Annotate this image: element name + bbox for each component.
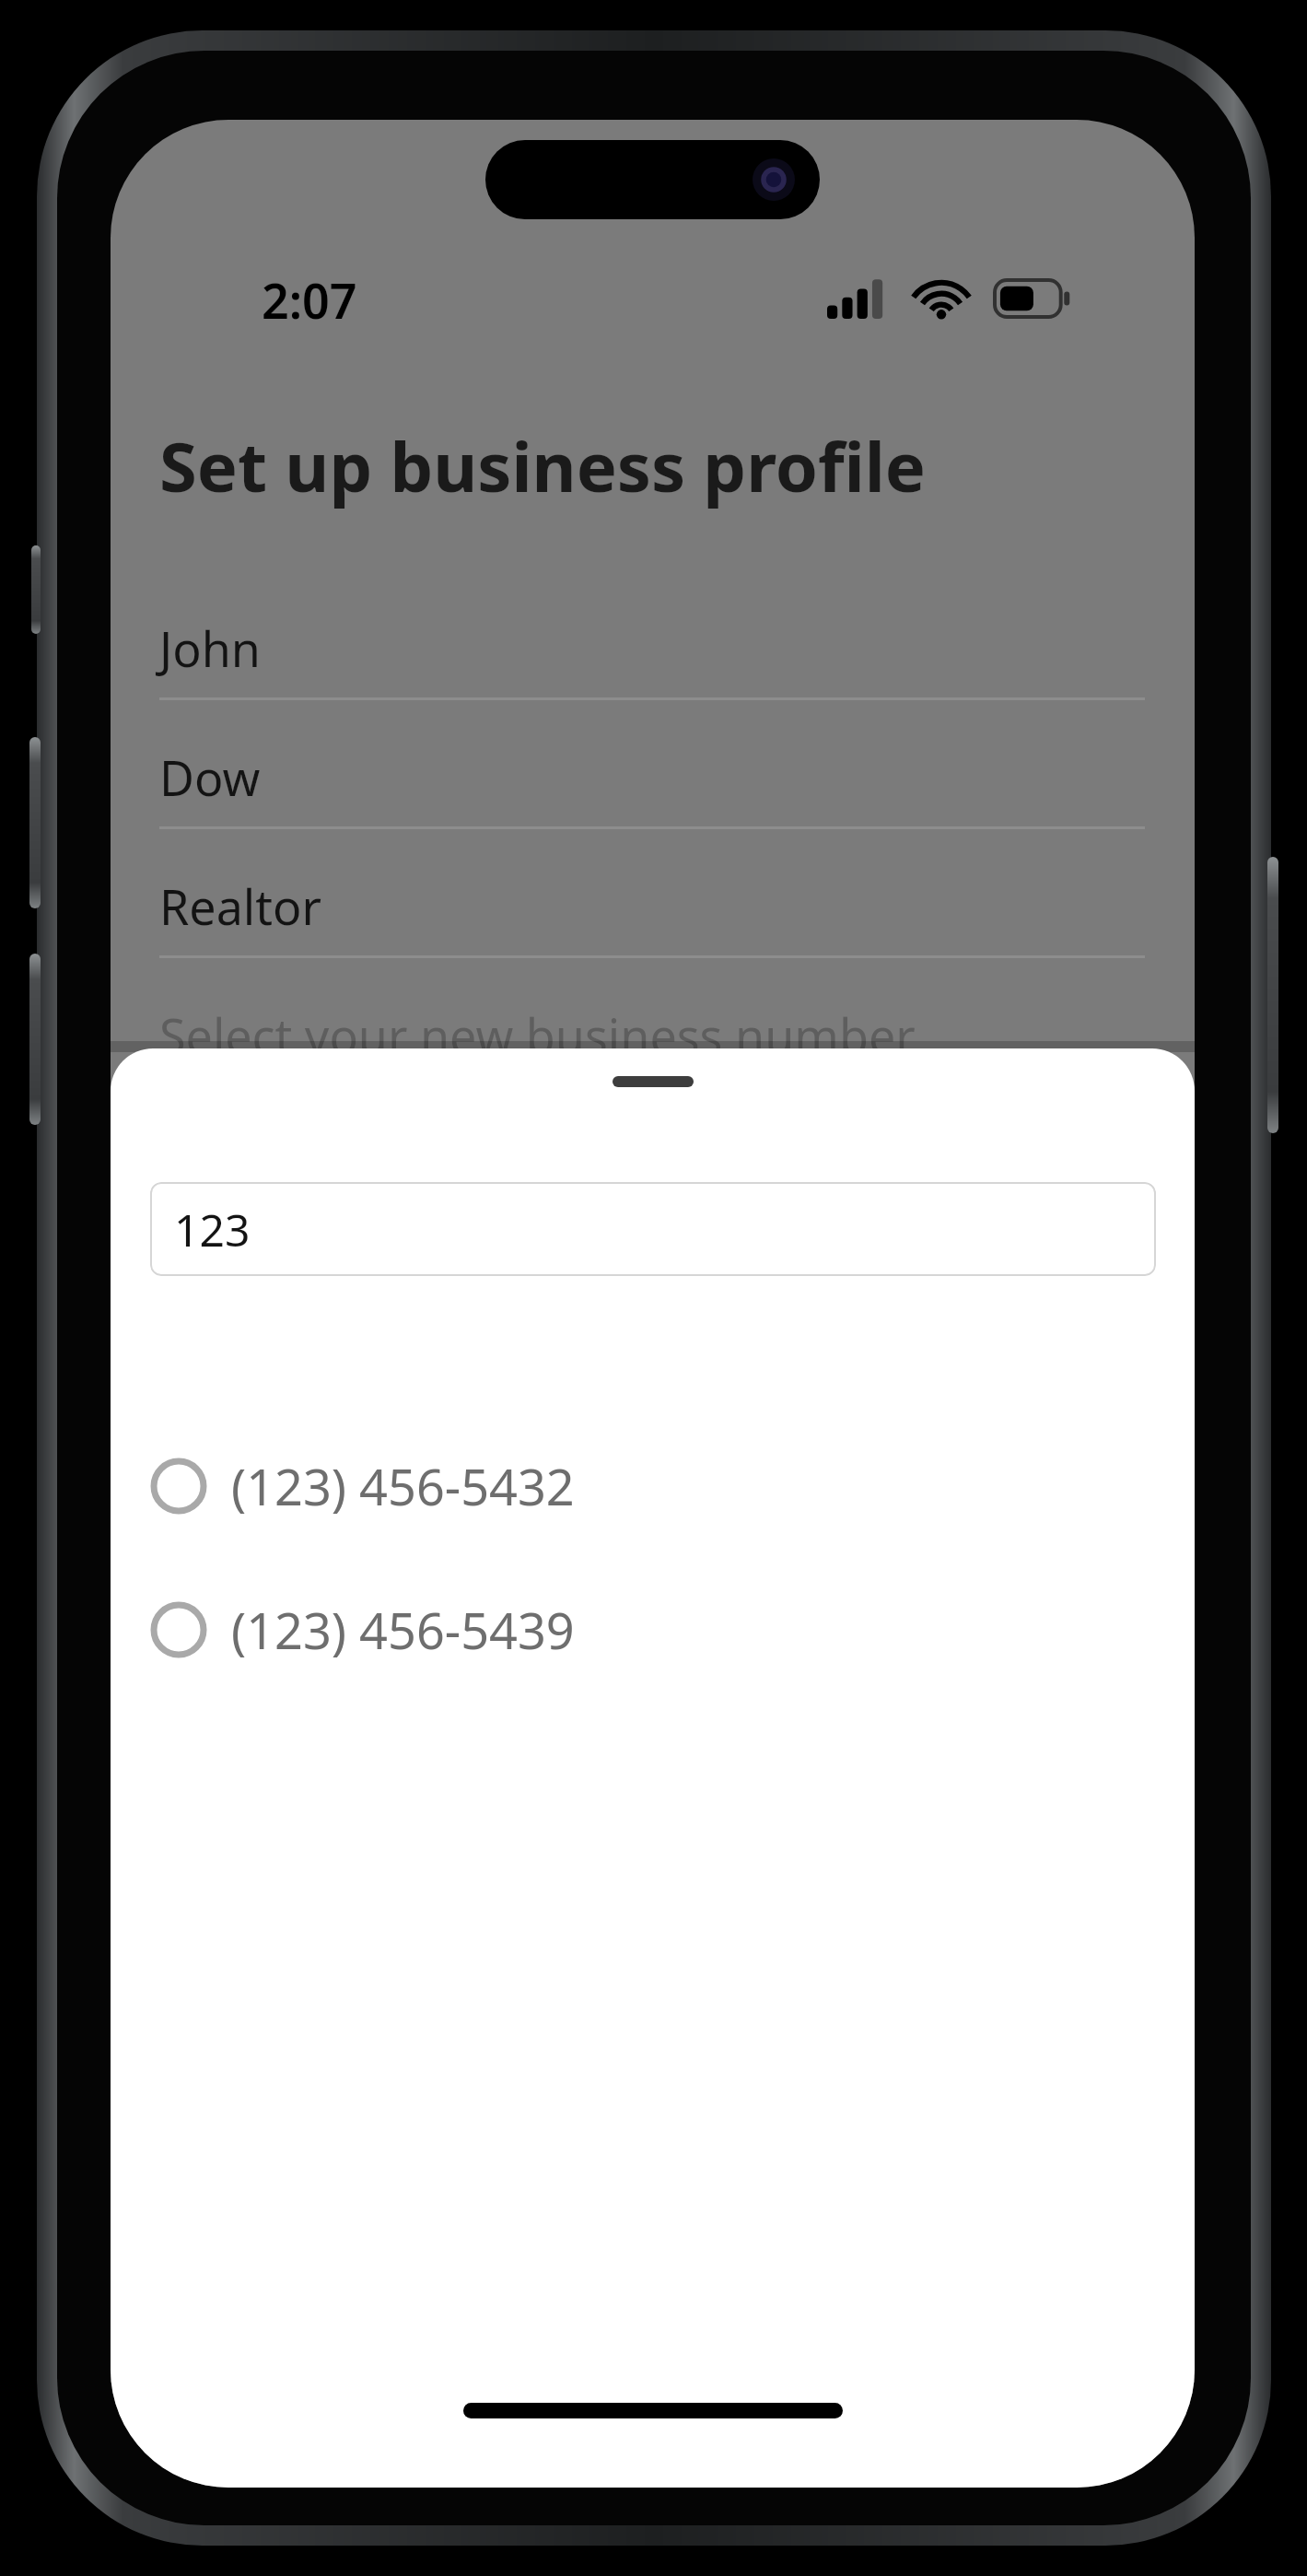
staticText: Realtor — [159, 873, 321, 939]
staticText: Dow — [159, 744, 261, 810]
button[interactable] — [613, 1076, 694, 1087]
staticText: John — [159, 615, 261, 681]
staticText: 2:07 — [262, 267, 357, 333]
staticText: (123) 456-5432 — [231, 1452, 575, 1520]
staticText: (123) 456-5439 — [231, 1596, 575, 1664]
staticText: 123 — [174, 1200, 251, 1259]
button[interactable]: (123) 456-5432 — [150, 1435, 1156, 1537]
button[interactable]: (123) 456-5439 — [150, 1579, 1156, 1680]
staticText: Select your new business number — [159, 1002, 916, 1068]
button[interactable]: 123 — [150, 1182, 1156, 1276]
staticText: Set up business profile — [159, 419, 926, 512]
